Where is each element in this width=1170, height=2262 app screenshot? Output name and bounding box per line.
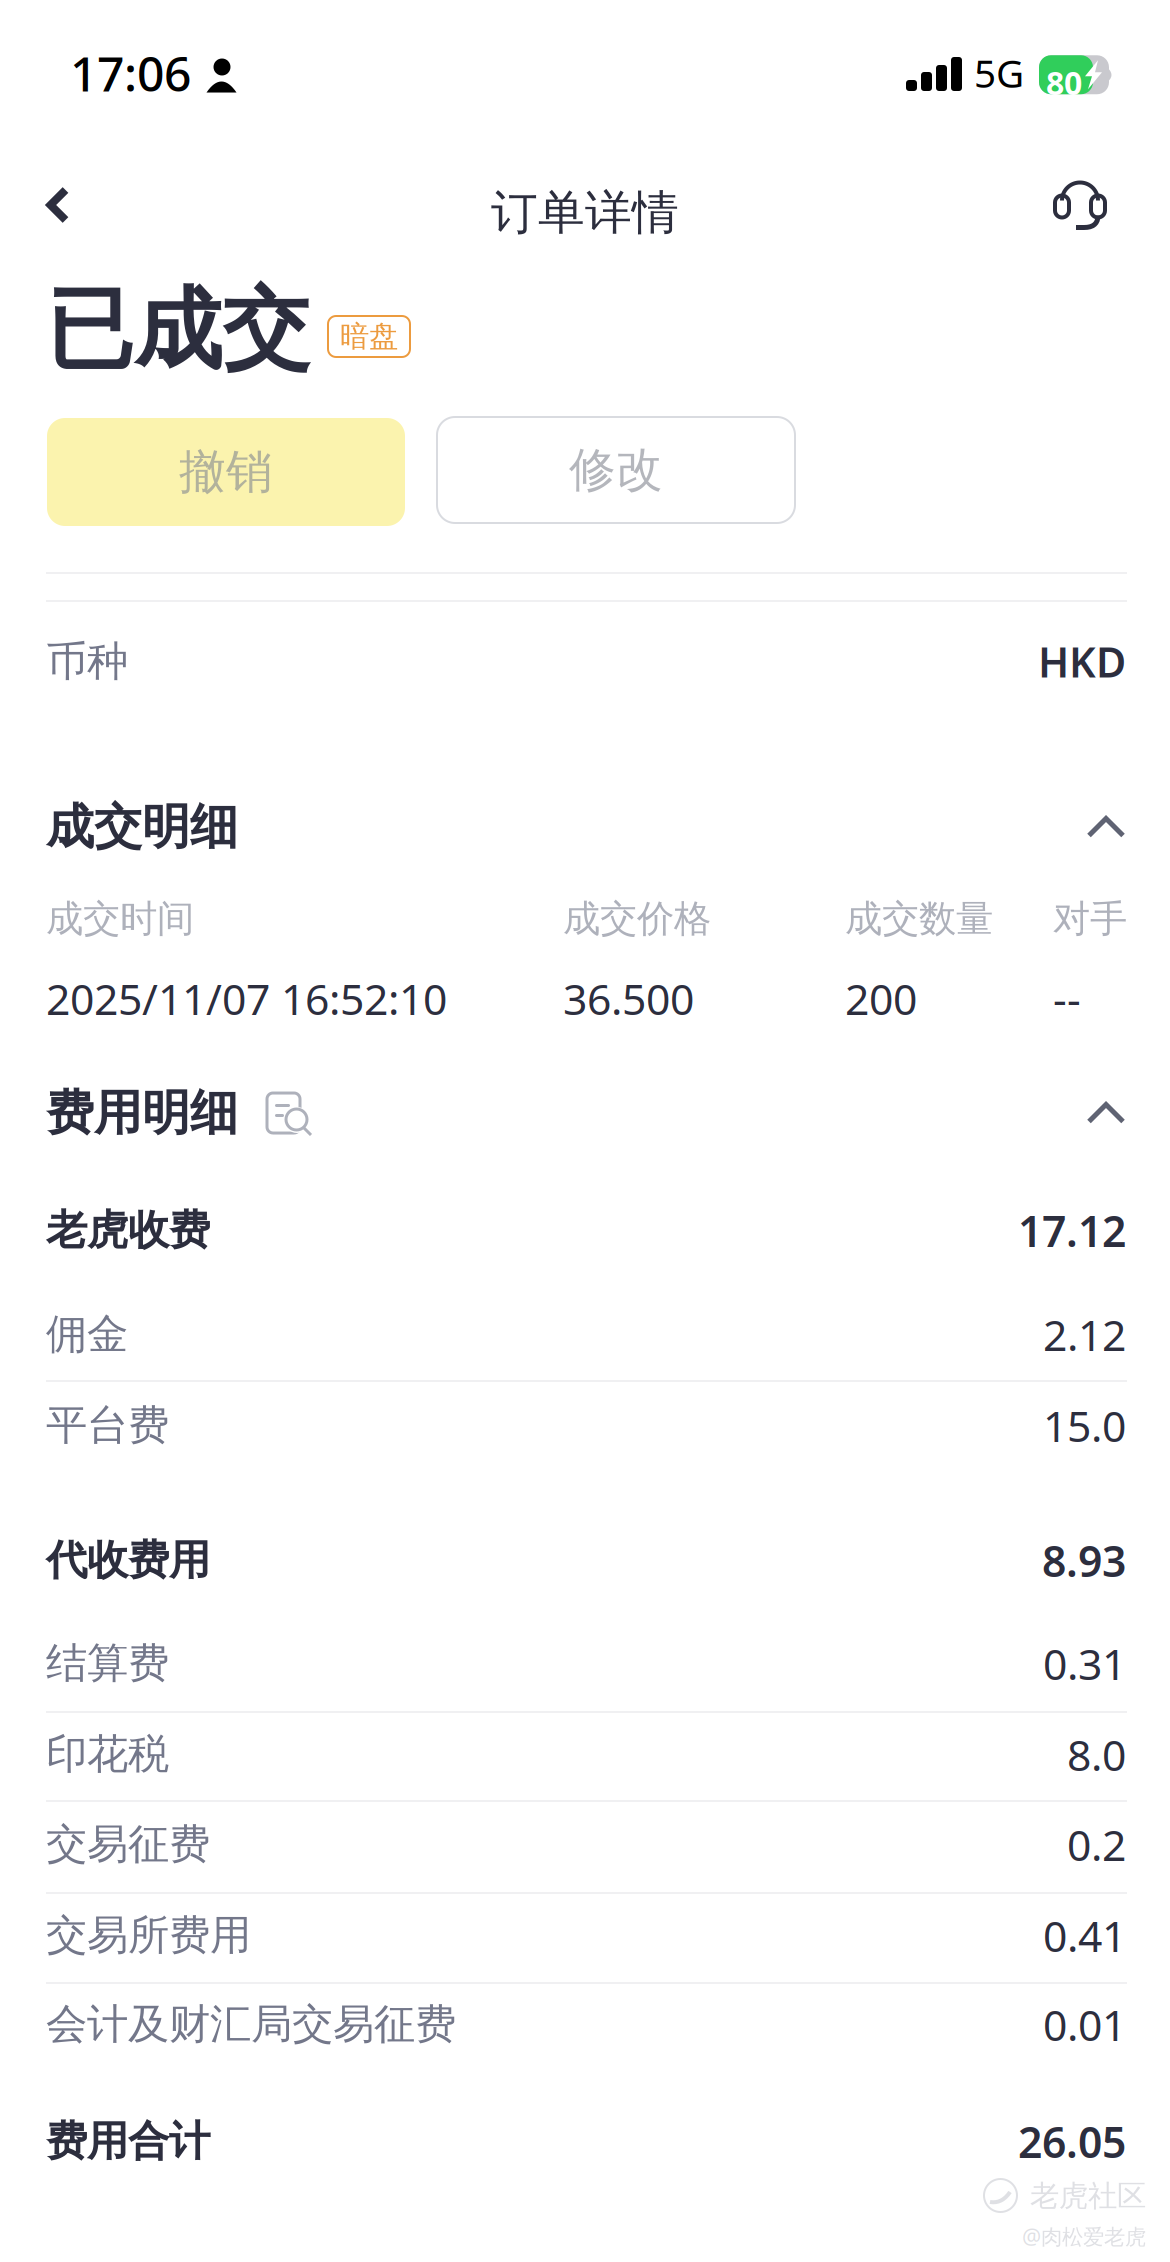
staticText: 200 — [845, 970, 917, 1027]
staticText: 币种 — [46, 636, 128, 687]
staticText: 8.93 — [1042, 1532, 1126, 1589]
staticText: @肉松爱老虎 — [1022, 2222, 1146, 2250]
staticText: 已成交 — [46, 276, 310, 384]
staticText: 0.31 — [1043, 1635, 1126, 1692]
staticText: 交易所费用 — [46, 1910, 251, 1961]
staticText: -- — [1053, 970, 1081, 1027]
button[interactable]: 修改 — [437, 417, 795, 523]
staticText: 成交价格 — [563, 896, 711, 942]
staticText: 8.0 — [1067, 1726, 1126, 1783]
staticText: 交易征费 — [46, 1819, 210, 1870]
staticText: HKD — [1038, 634, 1126, 689]
button[interactable]: 成交明细 — [0, 803, 1170, 851]
staticText: 代收费用 — [46, 1535, 210, 1586]
staticText: 2.12 — [1043, 1306, 1126, 1363]
staticText: 0.2 — [1067, 1816, 1126, 1873]
staticText: 15.0 — [1043, 1397, 1126, 1454]
staticText: 修改 — [569, 441, 663, 499]
staticText: 费用合计 — [46, 2116, 210, 2167]
staticText: 成交数量 — [845, 896, 993, 942]
staticText: 费用明细 — [46, 1083, 238, 1142]
staticText: 5G — [974, 47, 1024, 98]
staticText: 佣金 — [46, 1309, 128, 1360]
staticText: 订单详情 — [491, 184, 679, 241]
staticText: 17:06 — [70, 41, 191, 105]
staticText: 会计及财汇局交易征费 — [46, 1999, 456, 2050]
staticText: 成交时间 — [46, 896, 194, 942]
staticText: 暗盘 — [340, 318, 398, 354]
staticText: 结算费 — [46, 1638, 169, 1689]
button[interactable]: 客服 — [1040, 146, 1120, 229]
staticText: 36.500 — [563, 970, 694, 1027]
button[interactable]: 撤销 — [47, 418, 405, 526]
staticText: 2025/11/07 16:52:10 — [46, 970, 447, 1027]
staticText: 平台费 — [46, 1400, 169, 1451]
staticText: 17.12 — [1018, 1202, 1126, 1259]
staticText: 80 — [1046, 61, 1082, 104]
button[interactable]: 返回 — [0, 162, 109, 248]
staticText: 撤销 — [179, 443, 273, 501]
button[interactable]: 费用明细 — [0, 1089, 1170, 1137]
staticText: 0.41 — [1043, 1907, 1126, 1964]
staticText: 成交明细 — [46, 797, 238, 856]
staticText: 0.01 — [1043, 1996, 1126, 2053]
staticText: 老虎收费 — [46, 1205, 210, 1256]
staticText: 对手 — [1053, 896, 1127, 942]
staticText: 老虎社区 — [1030, 2178, 1146, 2214]
staticText: 印花税 — [46, 1729, 169, 1780]
staticText: 26.05 — [1018, 2113, 1126, 2170]
